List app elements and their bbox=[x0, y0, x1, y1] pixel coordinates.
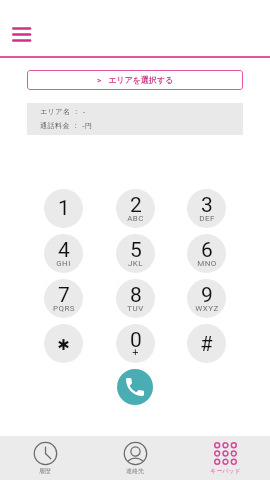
staticText: 9 bbox=[201, 283, 213, 308]
staticText: ✱ bbox=[57, 336, 70, 353]
staticText: 6 bbox=[201, 238, 213, 263]
staticText: TUV bbox=[127, 304, 144, 313]
staticText: JKL bbox=[128, 259, 143, 268]
button[interactable]: 7 bbox=[44, 279, 83, 318]
staticText: キーパッド bbox=[210, 467, 241, 475]
button[interactable]: 9 bbox=[187, 279, 226, 318]
button[interactable]: 連絡先 bbox=[90, 436, 180, 480]
staticText: 履歴 bbox=[39, 467, 51, 475]
button[interactable]: # bbox=[187, 324, 226, 363]
staticText: WXYZ bbox=[195, 304, 219, 313]
button[interactable]: 2 bbox=[116, 189, 155, 228]
staticText: 5 bbox=[130, 238, 142, 263]
button[interactable]: Call bbox=[117, 369, 153, 405]
button[interactable]: 3 bbox=[187, 189, 226, 228]
button[interactable]: 6 bbox=[187, 234, 226, 273]
staticText: 4 bbox=[58, 238, 70, 263]
staticText: > bbox=[97, 76, 102, 85]
staticText: エリア名 ： - bbox=[40, 107, 86, 117]
button[interactable]: Menu bbox=[8, 22, 35, 44]
staticText: ABC bbox=[127, 214, 144, 223]
staticText: 7 bbox=[58, 283, 70, 308]
staticText: 連絡先 bbox=[126, 467, 144, 475]
button[interactable]: 4 bbox=[44, 234, 83, 273]
staticText: エリアを選択する bbox=[108, 75, 174, 85]
staticText: PQRS bbox=[53, 304, 75, 313]
staticText: 2 bbox=[130, 193, 142, 218]
button[interactable]: 1 bbox=[44, 189, 83, 228]
staticText: MNO bbox=[197, 259, 217, 268]
button[interactable]: 5 bbox=[116, 234, 155, 273]
staticText: 0 bbox=[130, 328, 142, 353]
staticText: GHI bbox=[56, 259, 71, 268]
staticText: 通話料金 ： -円 bbox=[40, 121, 93, 131]
button[interactable]: ✱ bbox=[44, 324, 83, 363]
staticText: 3 bbox=[201, 193, 213, 218]
staticText: 8 bbox=[130, 283, 142, 308]
staticText: + bbox=[132, 346, 139, 359]
button[interactable]: 履歴 bbox=[0, 436, 90, 480]
staticText: DEF bbox=[199, 214, 215, 223]
button[interactable]: 8 bbox=[116, 279, 155, 318]
button[interactable]: > bbox=[27, 70, 243, 90]
staticText: # bbox=[200, 332, 213, 355]
button[interactable]: 0 bbox=[116, 324, 155, 363]
button[interactable]: キーパッド bbox=[180, 436, 270, 480]
staticText: 1 bbox=[58, 196, 70, 221]
